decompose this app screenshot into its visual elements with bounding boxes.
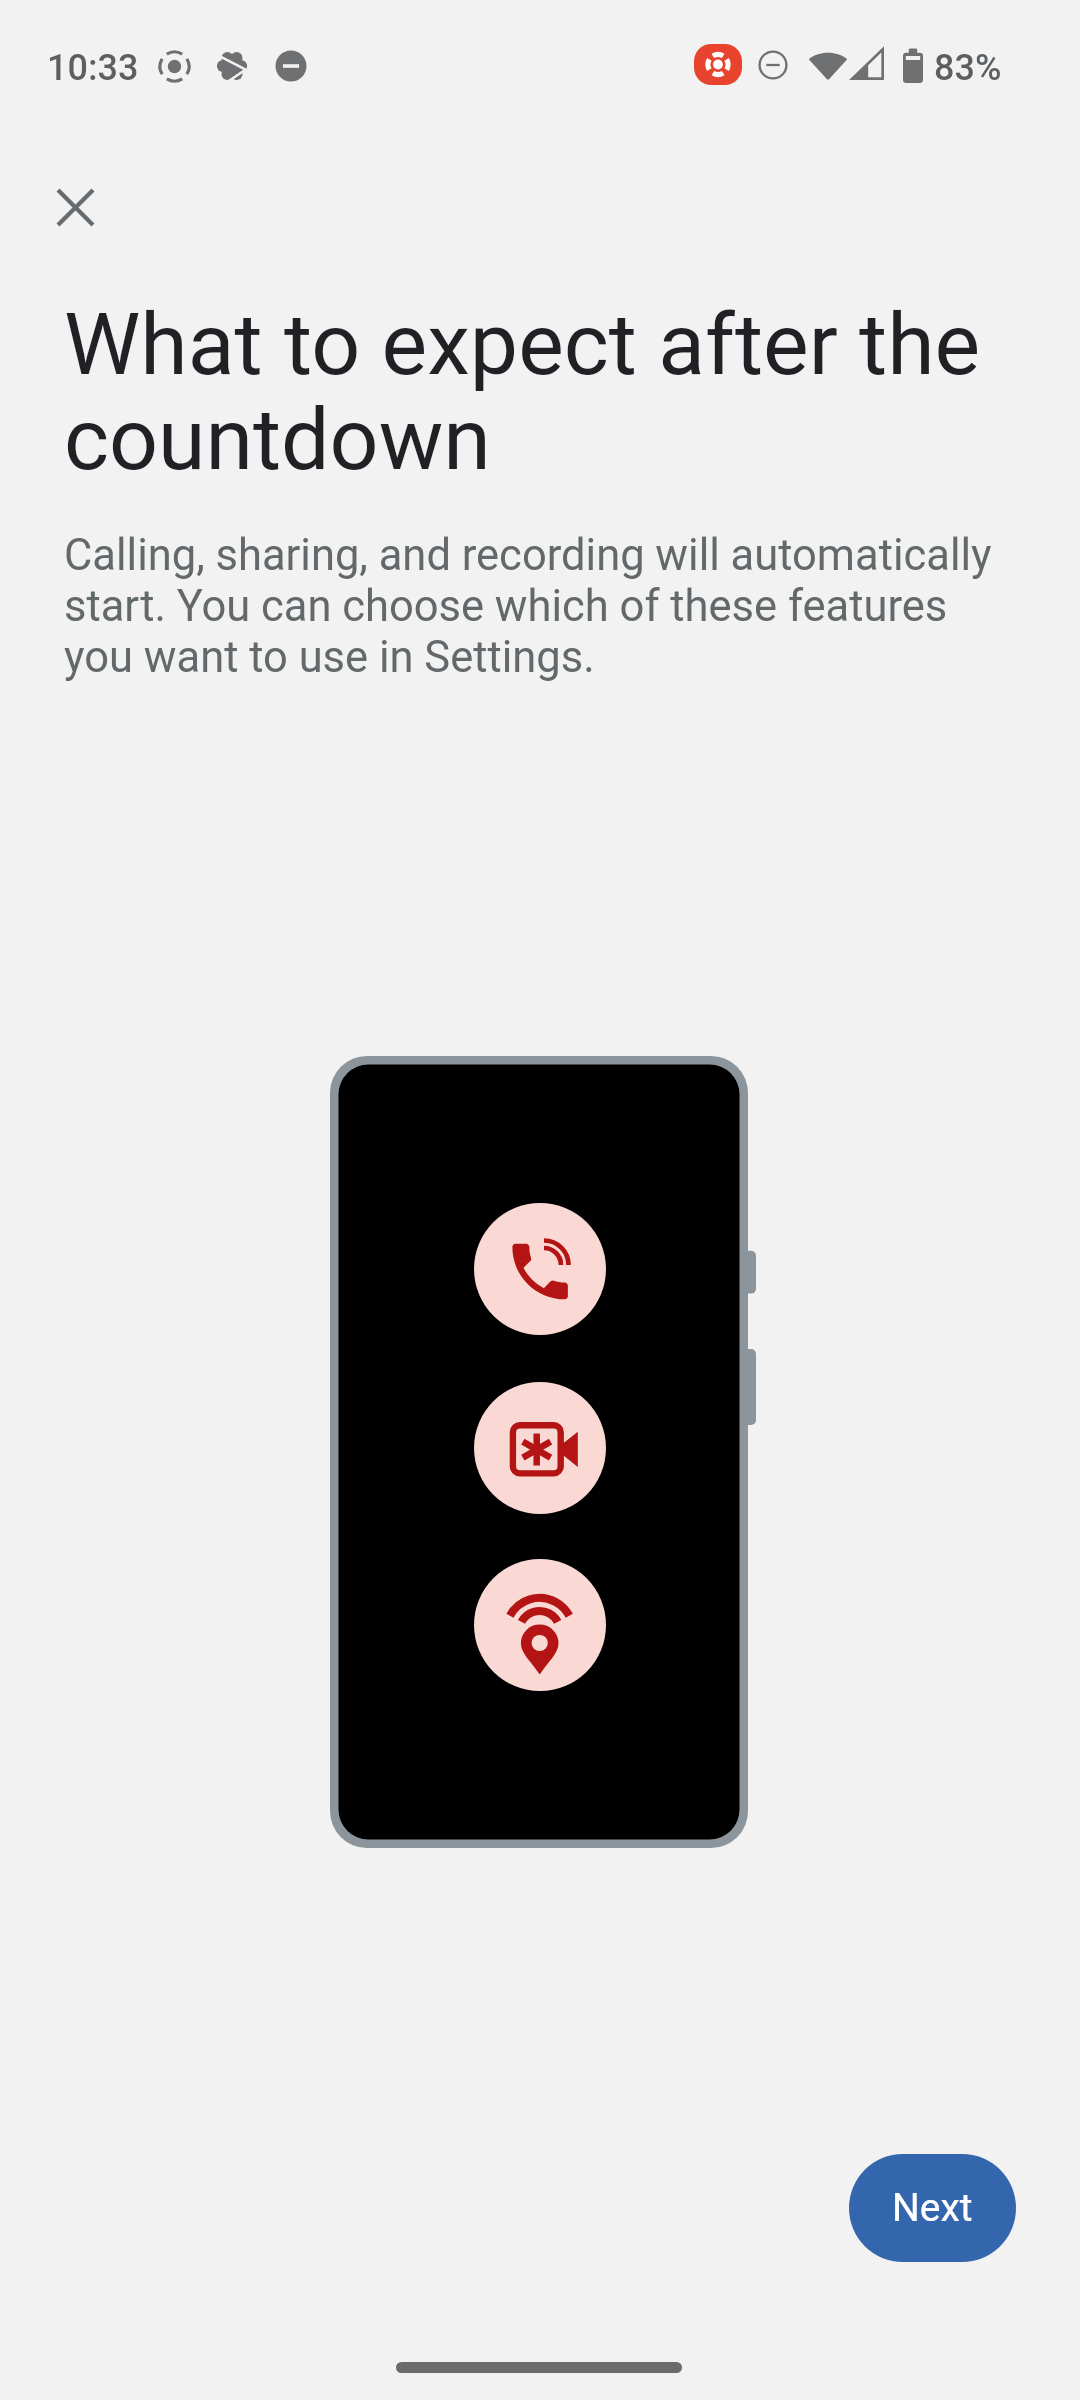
staticText: 10:33 bbox=[47, 47, 139, 89]
staticText: Next bbox=[892, 2185, 973, 2231]
staticText: 83% bbox=[934, 47, 1002, 89]
staticText: What to expect after the countdown bbox=[64, 294, 1016, 490]
staticText: Calling, sharing, and recording will aut… bbox=[64, 530, 1016, 683]
button[interactable]: Close bbox=[27, 159, 123, 255]
button[interactable]: Next bbox=[849, 2154, 1016, 2262]
